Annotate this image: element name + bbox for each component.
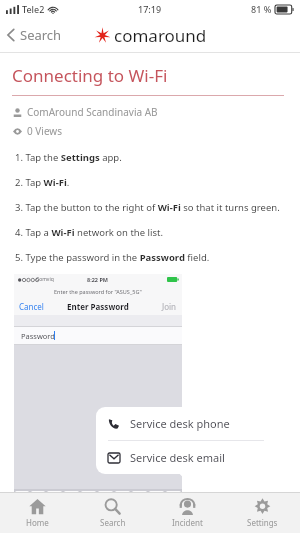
staticText: Join — [162, 301, 177, 312]
button[interactable]: Settings — [225, 493, 300, 533]
staticText: ComAround Scandinavia AB — [27, 105, 158, 119]
staticText: Enter the password for "ASUS_5G" — [54, 288, 142, 295]
staticText: Tele2 — [22, 3, 45, 15]
staticText: y — [104, 492, 108, 502]
staticText: t — [87, 492, 90, 502]
staticText: 4. Tap a Wi-Fi network on the list. — [15, 226, 163, 239]
button[interactable]: Service desk email — [96, 441, 276, 474]
staticText: i — [139, 492, 141, 502]
button[interactable]: Home — [0, 493, 75, 533]
staticText: r — [70, 492, 73, 502]
staticText: o — [154, 492, 159, 502]
button[interactable]: Search — [75, 493, 150, 533]
staticText: Incident — [172, 517, 203, 528]
staticText: q — [20, 492, 25, 502]
staticText: Enter Password — [67, 301, 129, 312]
staticText: 81 % — [251, 3, 272, 15]
staticText: 1. Tap the Settings app. — [15, 151, 122, 164]
button[interactable]: Incident — [150, 493, 225, 533]
staticText: Comviq — [36, 276, 54, 283]
staticText: Connecting to Wi-Fi — [12, 64, 168, 87]
staticText: v — [98, 520, 102, 530]
staticText: h — [113, 506, 118, 516]
staticText: Service desk phone — [130, 416, 230, 431]
staticText: comaround — [114, 24, 207, 47]
staticText: 8:22 PM — [87, 276, 109, 283]
staticText: Cancel — [19, 301, 44, 312]
staticText: p — [171, 492, 176, 502]
staticText: Settings — [247, 517, 278, 528]
staticText: Search — [20, 26, 62, 44]
staticText: Home — [26, 517, 49, 528]
staticText: e — [53, 492, 57, 502]
staticText: 2. Tap Wi-Fi. — [15, 176, 70, 189]
staticText: Search — [100, 517, 126, 528]
staticText: z — [38, 520, 42, 530]
staticText: 17:19 — [138, 3, 162, 15]
staticText: Password — [21, 331, 55, 341]
staticText: b — [116, 520, 121, 530]
staticText: 0 Views — [27, 124, 62, 138]
staticText: u — [120, 492, 125, 502]
staticText: a — [28, 506, 32, 516]
staticText: w — [35, 492, 41, 502]
button[interactable]: Service desk phone — [96, 407, 276, 440]
staticText: Service desk email — [130, 450, 225, 465]
staticText: 5. Type the password in the Password fie… — [15, 251, 210, 264]
staticText: 3. Tap the button to the right of Wi-Fi … — [15, 201, 280, 214]
button[interactable]: Search — [0, 20, 72, 50]
